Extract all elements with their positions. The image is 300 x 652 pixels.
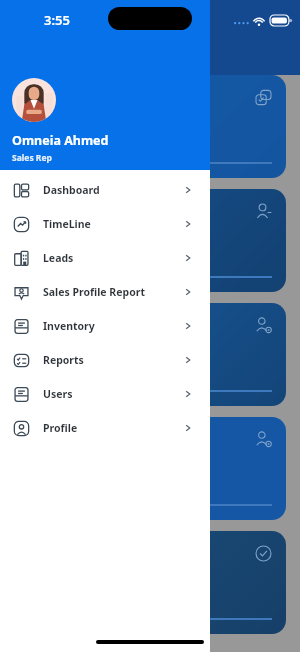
staticText: Reports (43, 353, 84, 367)
staticText: Sales Rep (12, 152, 52, 164)
button[interactable]: New Customer (14, 189, 286, 292)
button[interactable]: Reports (0, 343, 210, 377)
staticText: TimeLine (43, 217, 91, 231)
button[interactable]: Sales Profile Report (0, 275, 210, 309)
staticText: Omneia Ahmed (12, 132, 109, 149)
staticText: Inventory (43, 319, 95, 333)
staticText: Dashboard (43, 183, 100, 197)
staticText: Meeting (28, 346, 80, 364)
staticText: 3:55 (44, 11, 70, 29)
staticText: Leads (43, 251, 74, 265)
button[interactable]: Dashboard (0, 173, 210, 207)
button[interactable]: Pending (14, 417, 286, 520)
button[interactable]: Users (0, 377, 210, 411)
button[interactable]: TimeLine (0, 207, 210, 241)
button[interactable]: Inventory (0, 309, 210, 343)
button[interactable]: Profile (0, 411, 210, 445)
staticText: Tasks (28, 118, 62, 136)
staticText: Sales Profile Report (43, 285, 145, 299)
button[interactable]: Approval (14, 531, 286, 634)
button[interactable]: Leads (0, 241, 210, 275)
staticText: Profile (43, 421, 78, 435)
button[interactable]: Meeting (14, 303, 286, 406)
button[interactable]: Tasks (14, 75, 286, 178)
staticText: Users (43, 387, 73, 401)
